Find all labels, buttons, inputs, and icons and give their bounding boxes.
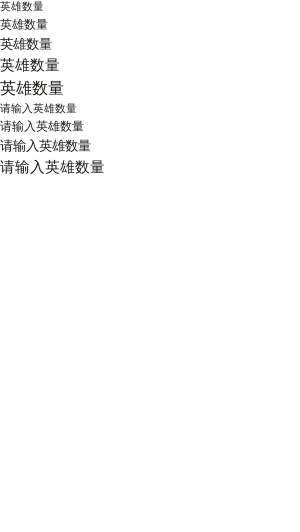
staticText: 英雄数量	[0, 56, 60, 74]
staticText: 英雄数量	[0, 78, 64, 98]
staticText: 英雄数量	[0, 36, 52, 52]
staticText: 请输入英雄数量	[0, 119, 84, 134]
staticText: 英雄数量	[0, 0, 44, 13]
staticText: 请输入英雄数量	[0, 102, 77, 115]
staticText: 请输入英雄数量	[0, 138, 91, 154]
staticText: 英雄数量	[0, 17, 48, 32]
staticText: 请输入英雄数量	[0, 158, 105, 176]
